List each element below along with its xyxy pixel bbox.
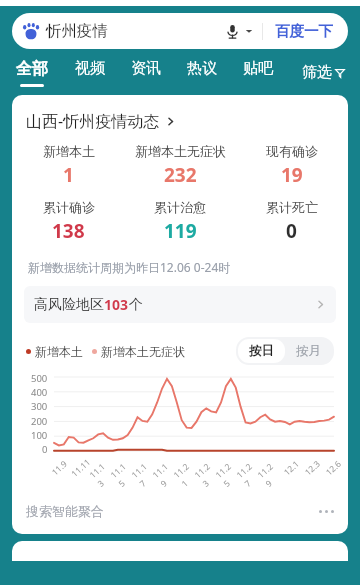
staticText: 百度一下 <box>275 22 333 40</box>
staticText: 搜索智能聚合 <box>26 503 104 519</box>
staticText: 119 <box>164 218 197 244</box>
button[interactable]: 资讯 <box>131 59 161 86</box>
staticText: 1 <box>63 162 74 188</box>
staticText: 资讯 <box>131 59 161 78</box>
staticText: 累计死亡 <box>266 199 318 215</box>
button[interactable]: 搜索智能聚合 <box>12 499 348 523</box>
staticText: 11.13 <box>87 458 118 489</box>
staticText: 400 <box>31 386 48 399</box>
button[interactable]: 百度一下 <box>263 16 345 46</box>
button[interactable]: 累计死亡 <box>241 199 342 244</box>
staticText: 11.23 <box>192 458 223 489</box>
staticText: 新增本土 <box>43 143 95 159</box>
staticText: 11.21 <box>171 458 202 489</box>
staticText: 全部 <box>16 59 48 79</box>
staticText: 视频 <box>75 59 105 78</box>
staticText: 新增本土 <box>35 344 83 359</box>
button[interactable]: 累计确诊 <box>18 199 119 244</box>
staticText: 11.27 <box>234 458 265 489</box>
staticText: 232 <box>164 162 197 188</box>
staticText: 200 <box>31 415 48 428</box>
staticText: 忻州疫情 <box>46 21 108 41</box>
staticText: 筛选 <box>302 63 332 82</box>
staticText: 累计治愈 <box>154 199 206 215</box>
button[interactable]: 新增本土无症状 <box>119 143 241 188</box>
staticText: 19 <box>281 162 303 188</box>
button[interactable]: 新增本土 <box>18 143 119 188</box>
staticText: 12.6 <box>323 458 344 478</box>
staticText: 新增本土无症状 <box>135 143 226 159</box>
staticText: 11.15 <box>108 458 139 489</box>
staticText: 300 <box>31 400 48 413</box>
button[interactable]: 按月 <box>285 339 332 363</box>
button[interactable]: 忻州疫情 <box>12 13 348 49</box>
button[interactable]: 视频 <box>75 59 105 86</box>
staticText: 高风险地区 <box>34 296 104 314</box>
staticText: 0 <box>42 443 48 456</box>
staticText: 累计确诊 <box>43 199 95 215</box>
staticText: 103 <box>104 295 129 314</box>
staticText: 山西-忻州疫情动态 <box>26 110 160 132</box>
staticText: 个 <box>129 296 143 314</box>
button[interactable]: 全部 <box>16 59 48 87</box>
staticText: 0 <box>286 218 297 244</box>
button[interactable]: 山西-忻州疫情动态 <box>12 108 348 134</box>
button[interactable]: 贴吧 <box>243 59 273 86</box>
staticText: 138 <box>52 218 85 244</box>
button[interactable]: Voice search <box>222 21 242 41</box>
staticText: 11.9 <box>49 458 70 478</box>
staticText: 热议 <box>187 59 217 78</box>
button[interactable]: 热议 <box>187 59 217 86</box>
button[interactable]: 现有确诊 <box>241 143 342 188</box>
staticText: 现有确诊 <box>266 143 318 159</box>
staticText: 11.11 <box>69 456 93 480</box>
button[interactable]: 累计治愈 <box>119 199 241 244</box>
staticText: 12.3 <box>302 458 323 478</box>
staticText: 11.17 <box>129 458 160 489</box>
button[interactable]: 筛选 <box>302 63 345 82</box>
staticText: 500 <box>31 372 48 385</box>
button[interactable]: More options <box>319 510 334 513</box>
staticText: 新增本土无症状 <box>101 344 185 359</box>
staticText: 11.19 <box>150 458 181 489</box>
staticText: 按月 <box>296 343 321 359</box>
staticText: 100 <box>31 429 48 442</box>
staticText: 12.1 <box>281 458 302 478</box>
button[interactable]: 高风险地区 <box>24 286 336 323</box>
staticText: 11.29 <box>255 458 286 489</box>
staticText: 新增数据统计周期为昨日12.06 0-24时 <box>28 259 231 275</box>
staticText: 贴吧 <box>243 59 273 78</box>
button[interactable]: 按日 <box>238 339 285 363</box>
staticText: 按日 <box>249 343 274 359</box>
staticText: 11.25 <box>213 458 244 489</box>
